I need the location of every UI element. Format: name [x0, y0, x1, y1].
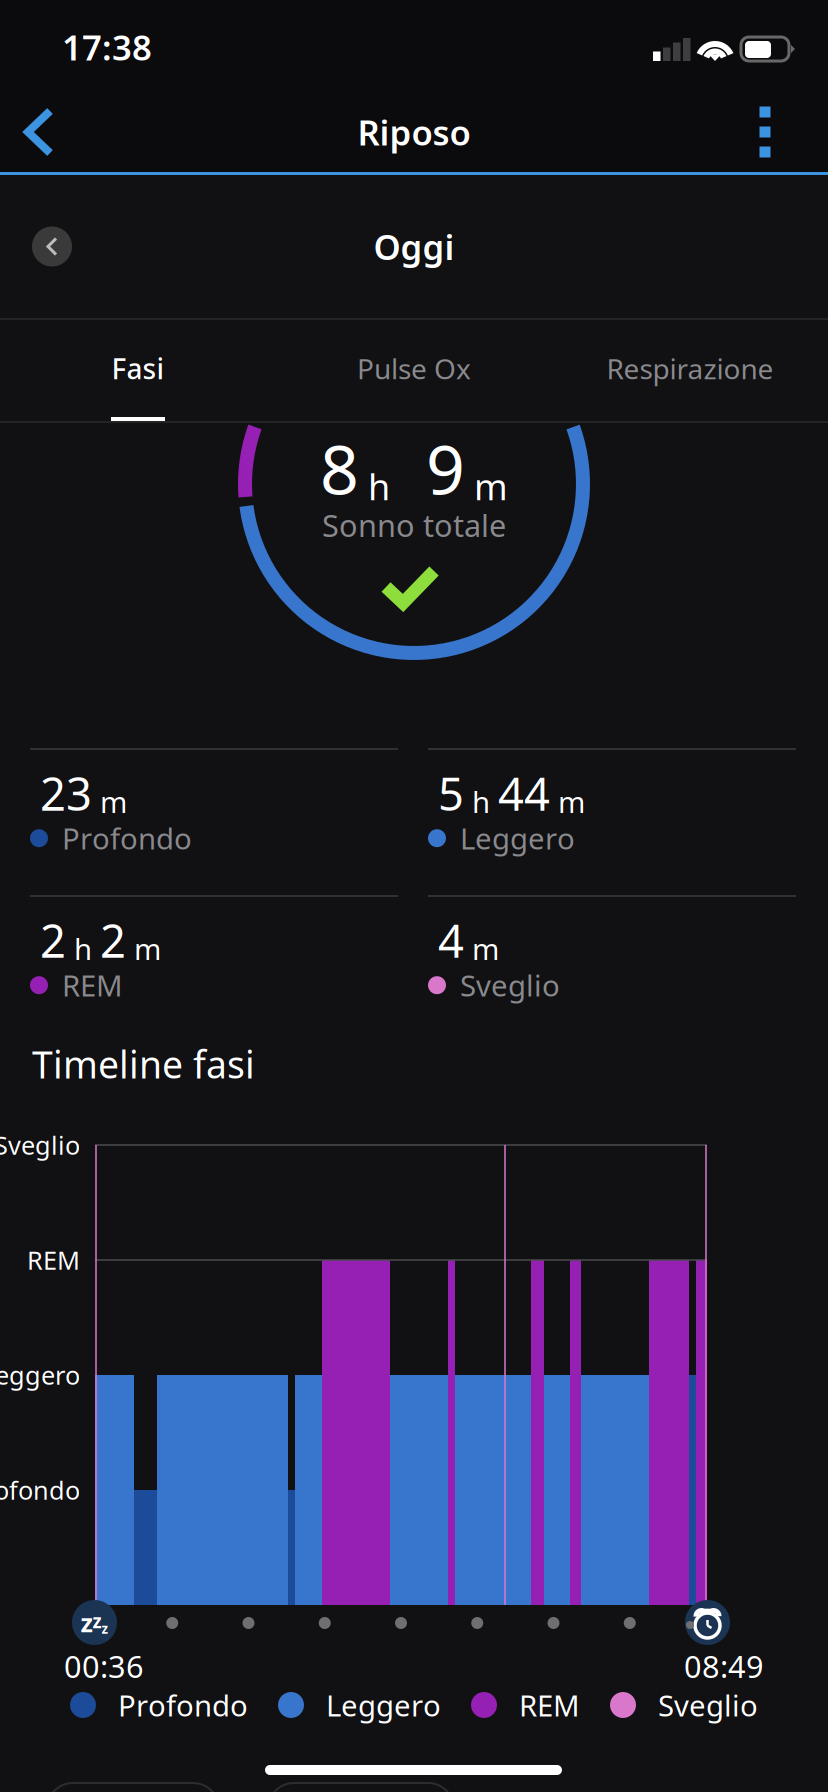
button[interactable]: Respirazione — [552, 320, 828, 421]
staticText: m — [550, 782, 585, 821]
button[interactable]: Giorno precedente — [0, 175, 104, 318]
staticText: 9 — [390, 423, 465, 513]
staticText: 44 — [498, 763, 550, 823]
staticText: 4 — [438, 910, 464, 970]
staticText: Riposo — [357, 109, 470, 155]
button[interactable]: Azione 2 — [219, 1783, 454, 1792]
staticText: h — [359, 462, 390, 510]
staticText: REM — [519, 1685, 580, 1724]
staticText: REM — [27, 1243, 80, 1277]
staticText: Profondo — [118, 1685, 248, 1724]
staticText: 2 — [100, 910, 126, 970]
staticText: h — [464, 782, 498, 821]
staticText: 5 — [438, 763, 464, 823]
staticText: 17:38 — [62, 24, 152, 70]
staticText: h — [66, 929, 100, 968]
button[interactable]: Altre opzioni — [715, 84, 828, 180]
staticText: Profondo — [62, 819, 192, 858]
staticText: Leggero — [326, 1685, 441, 1724]
staticText: z — [101, 1620, 108, 1637]
staticText: Sveglio — [0, 1128, 80, 1162]
staticText: 8 — [320, 423, 359, 513]
staticText: Sveglio — [460, 966, 560, 1005]
staticText: Timeline fasi — [32, 1039, 255, 1089]
staticText: Pulse Ox — [357, 350, 471, 387]
staticText: 23 — [40, 763, 92, 823]
staticText: Sonno totale — [322, 505, 506, 545]
staticText: Profondo — [0, 1473, 80, 1507]
staticText: Leggero — [0, 1358, 80, 1392]
staticText: 00:36 — [64, 1646, 144, 1686]
staticText: m — [126, 929, 161, 968]
staticText: z — [80, 1606, 92, 1639]
button[interactable]: Fasi — [0, 320, 276, 421]
staticText: Oggi — [373, 223, 454, 269]
staticText: Fasi — [111, 350, 164, 387]
button[interactable]: Azione 1 — [0, 1783, 219, 1792]
staticText: 08:49 — [684, 1646, 764, 1686]
staticText: m — [464, 929, 499, 968]
button[interactable]: Pulse Ox — [276, 320, 552, 421]
staticText: Leggero — [460, 819, 575, 858]
button[interactable]: Indietro — [0, 84, 90, 180]
staticText: m — [92, 782, 127, 821]
staticText: 2 — [40, 910, 66, 970]
staticText: m — [465, 462, 508, 510]
staticText: z — [92, 1608, 101, 1633]
staticText: Respirazione — [606, 350, 773, 387]
staticText: REM — [62, 966, 123, 1005]
staticText: Sveglio — [658, 1685, 758, 1724]
